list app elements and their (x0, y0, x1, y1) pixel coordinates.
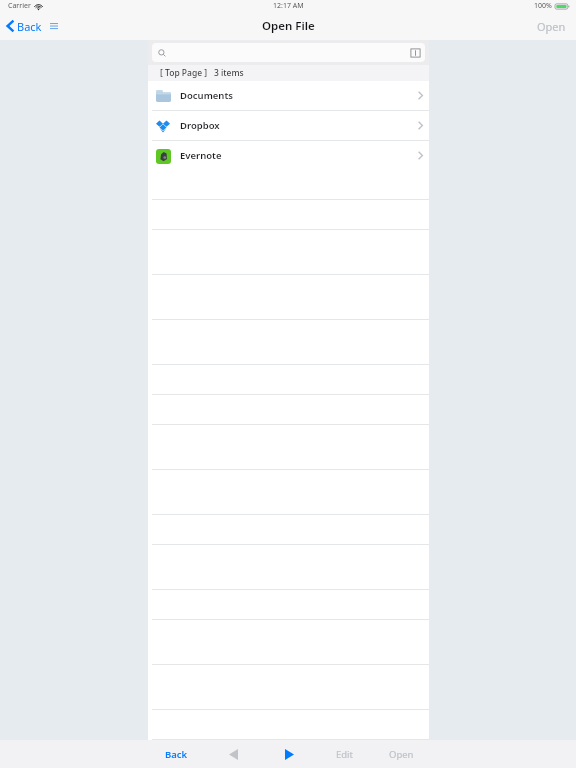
staticText: Dropbox (180, 119, 220, 132)
staticText: Back (165, 748, 188, 761)
staticText: Evernote (180, 149, 222, 162)
button[interactable]: Back (148, 740, 205, 768)
staticText: 12:17 AM (273, 1, 304, 11)
staticText: 3 items (214, 67, 244, 79)
staticText: Documents (180, 89, 233, 102)
button[interactable]: Evernote (148, 141, 429, 170)
staticText: Back (17, 19, 42, 34)
button[interactable]: Open (373, 740, 429, 768)
button[interactable]: Next (261, 740, 317, 768)
button[interactable]: Back (0, 12, 48, 40)
button[interactable]: Open (527, 12, 576, 40)
staticText: Open (389, 748, 414, 761)
staticText: Open File (262, 18, 315, 34)
button[interactable]: Edit (317, 740, 373, 768)
button[interactable]: Menu (44, 14, 64, 38)
staticText: Open (537, 19, 566, 34)
staticText: Edit (336, 748, 354, 761)
staticText: [ Top Page ] (160, 67, 208, 79)
button[interactable]: Dropbox (148, 111, 429, 140)
button[interactable]: Previous (205, 740, 261, 768)
button[interactable]: Documents (148, 81, 429, 110)
staticText: 100% (534, 1, 552, 11)
button[interactable]: Bookmarks (405, 44, 425, 62)
button[interactable]: Bookmarks (152, 43, 425, 62)
staticText: Carrier (8, 1, 31, 11)
